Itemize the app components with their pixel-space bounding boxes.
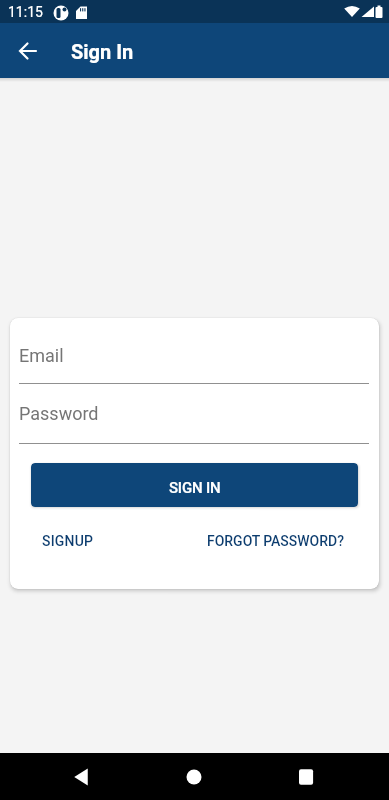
button[interactable]: SIGNUP [30,523,105,559]
button[interactable]: Email [19,345,369,383]
button[interactable]: Password [19,403,369,443]
button[interactable]: FORGOT PASSWORD? [204,523,344,559]
button[interactable] [57,753,105,800]
staticText: Email [19,345,64,366]
staticText: Sign In [71,40,134,63]
staticText: Password [19,403,99,424]
staticText: SIGNUP [42,533,94,549]
button[interactable] [4,27,52,75]
button[interactable] [282,753,330,800]
staticText: FORGOT PASSWORD? [207,533,344,549]
button[interactable]: SIGN IN [31,463,358,507]
staticText: 11:15 [8,4,43,20]
staticText: SIGN IN [169,479,221,497]
button[interactable] [170,753,218,800]
